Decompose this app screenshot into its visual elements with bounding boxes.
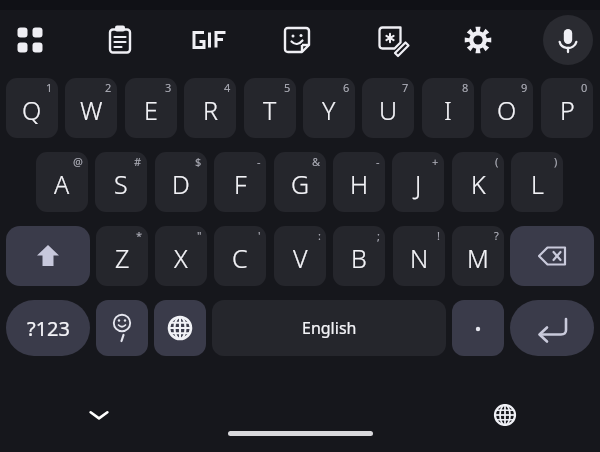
button[interactable]: D [155, 152, 207, 212]
staticText: @ [73, 154, 83, 169]
button[interactable]: O [481, 78, 533, 138]
staticText: N [410, 241, 429, 275]
staticText: H [350, 167, 369, 201]
button[interactable]: R [184, 78, 236, 138]
staticText: English [302, 317, 357, 339]
staticText: D [172, 167, 190, 201]
staticText: A [54, 167, 70, 201]
staticText: 1 [46, 80, 53, 95]
staticText: 6 [343, 80, 350, 95]
button[interactable]: Clipboard [98, 18, 142, 62]
staticText: B [351, 241, 367, 275]
button[interactable]: P [541, 78, 593, 138]
button[interactable]: A [36, 152, 88, 212]
staticText: Y [322, 93, 336, 127]
button[interactable]: V [274, 226, 326, 286]
button[interactable]: J [392, 152, 444, 212]
button[interactable]: Language [487, 398, 523, 432]
staticText: ? [494, 228, 499, 243]
button[interactable]: U [362, 78, 414, 138]
staticText: ! [437, 228, 440, 243]
staticText: M [467, 241, 489, 275]
button[interactable]: Period [452, 300, 504, 356]
button[interactable]: Y [303, 78, 355, 138]
staticText: W [80, 93, 103, 127]
staticText: 7 [402, 80, 409, 95]
staticText: P [560, 93, 575, 127]
staticText: S [114, 167, 128, 201]
staticText: G [291, 167, 310, 201]
staticText: X [174, 241, 188, 275]
button[interactable]: Backspace [510, 226, 594, 286]
button[interactable]: W [65, 78, 117, 138]
button[interactable]: Enter [510, 300, 594, 356]
staticText: V [293, 241, 308, 275]
staticText: K [471, 167, 486, 201]
staticText: 8 [462, 80, 469, 95]
button[interactable]: B [333, 226, 385, 286]
button[interactable]: Create sticker [370, 18, 414, 62]
staticText: * [136, 228, 143, 243]
button[interactable]: Stickers [275, 18, 319, 62]
button[interactable]: M [452, 226, 504, 286]
staticText: 0 [581, 80, 588, 95]
staticText: ; [377, 228, 380, 243]
button[interactable]: Q [6, 78, 58, 138]
staticText: I [444, 93, 452, 127]
staticText: 2 [105, 80, 112, 95]
button[interactable]: English [212, 300, 446, 356]
staticText: " [197, 228, 202, 243]
staticText: - [376, 154, 380, 169]
button[interactable]: X [155, 226, 207, 286]
staticText: R [203, 93, 218, 127]
staticText: Q [22, 93, 42, 127]
button[interactable]: I [422, 78, 474, 138]
button[interactable]: S [95, 152, 147, 212]
staticText: ?123 [27, 315, 70, 342]
button[interactable]: H [333, 152, 385, 212]
staticText: C [232, 241, 248, 275]
staticText: T [263, 93, 277, 127]
staticText: ) [554, 154, 558, 169]
staticText: 5 [284, 80, 291, 95]
staticText: L [531, 167, 544, 201]
staticText: O [497, 93, 517, 127]
button[interactable]: T [244, 78, 296, 138]
staticText: + [432, 154, 439, 169]
staticText: : [318, 228, 321, 243]
button[interactable]: Settings [456, 18, 500, 62]
staticText: & [312, 154, 321, 169]
staticText: - [257, 154, 261, 169]
button[interactable]: Emoji [96, 300, 148, 356]
button[interactable]: ?123 [6, 300, 90, 356]
button[interactable]: N [393, 226, 445, 286]
staticText: E [144, 93, 158, 127]
staticText: Z [115, 241, 130, 275]
button[interactable]: Apps [8, 18, 52, 62]
button[interactable]: C [214, 226, 266, 286]
staticText: $ [195, 154, 202, 169]
button[interactable]: E [125, 78, 177, 138]
staticText: 4 [224, 80, 231, 95]
button[interactable]: Z [96, 226, 148, 286]
staticText: ( [495, 154, 499, 169]
button[interactable]: Change language [154, 300, 206, 356]
staticText: # [134, 154, 142, 169]
button[interactable]: L [511, 152, 563, 212]
staticText: U [379, 93, 398, 127]
staticText: F [234, 167, 247, 201]
button[interactable]: K [452, 152, 504, 212]
button[interactable]: Hide keyboard [78, 398, 120, 432]
staticText: J [415, 167, 422, 201]
staticText: 9 [521, 80, 528, 95]
staticText: 3 [165, 80, 172, 95]
button[interactable]: F [214, 152, 266, 212]
button[interactable]: Voice input [543, 15, 593, 65]
staticText: ' [258, 228, 261, 243]
button[interactable]: GIF [188, 18, 232, 62]
button[interactable]: G [274, 152, 326, 212]
button[interactable]: Shift [6, 226, 90, 286]
